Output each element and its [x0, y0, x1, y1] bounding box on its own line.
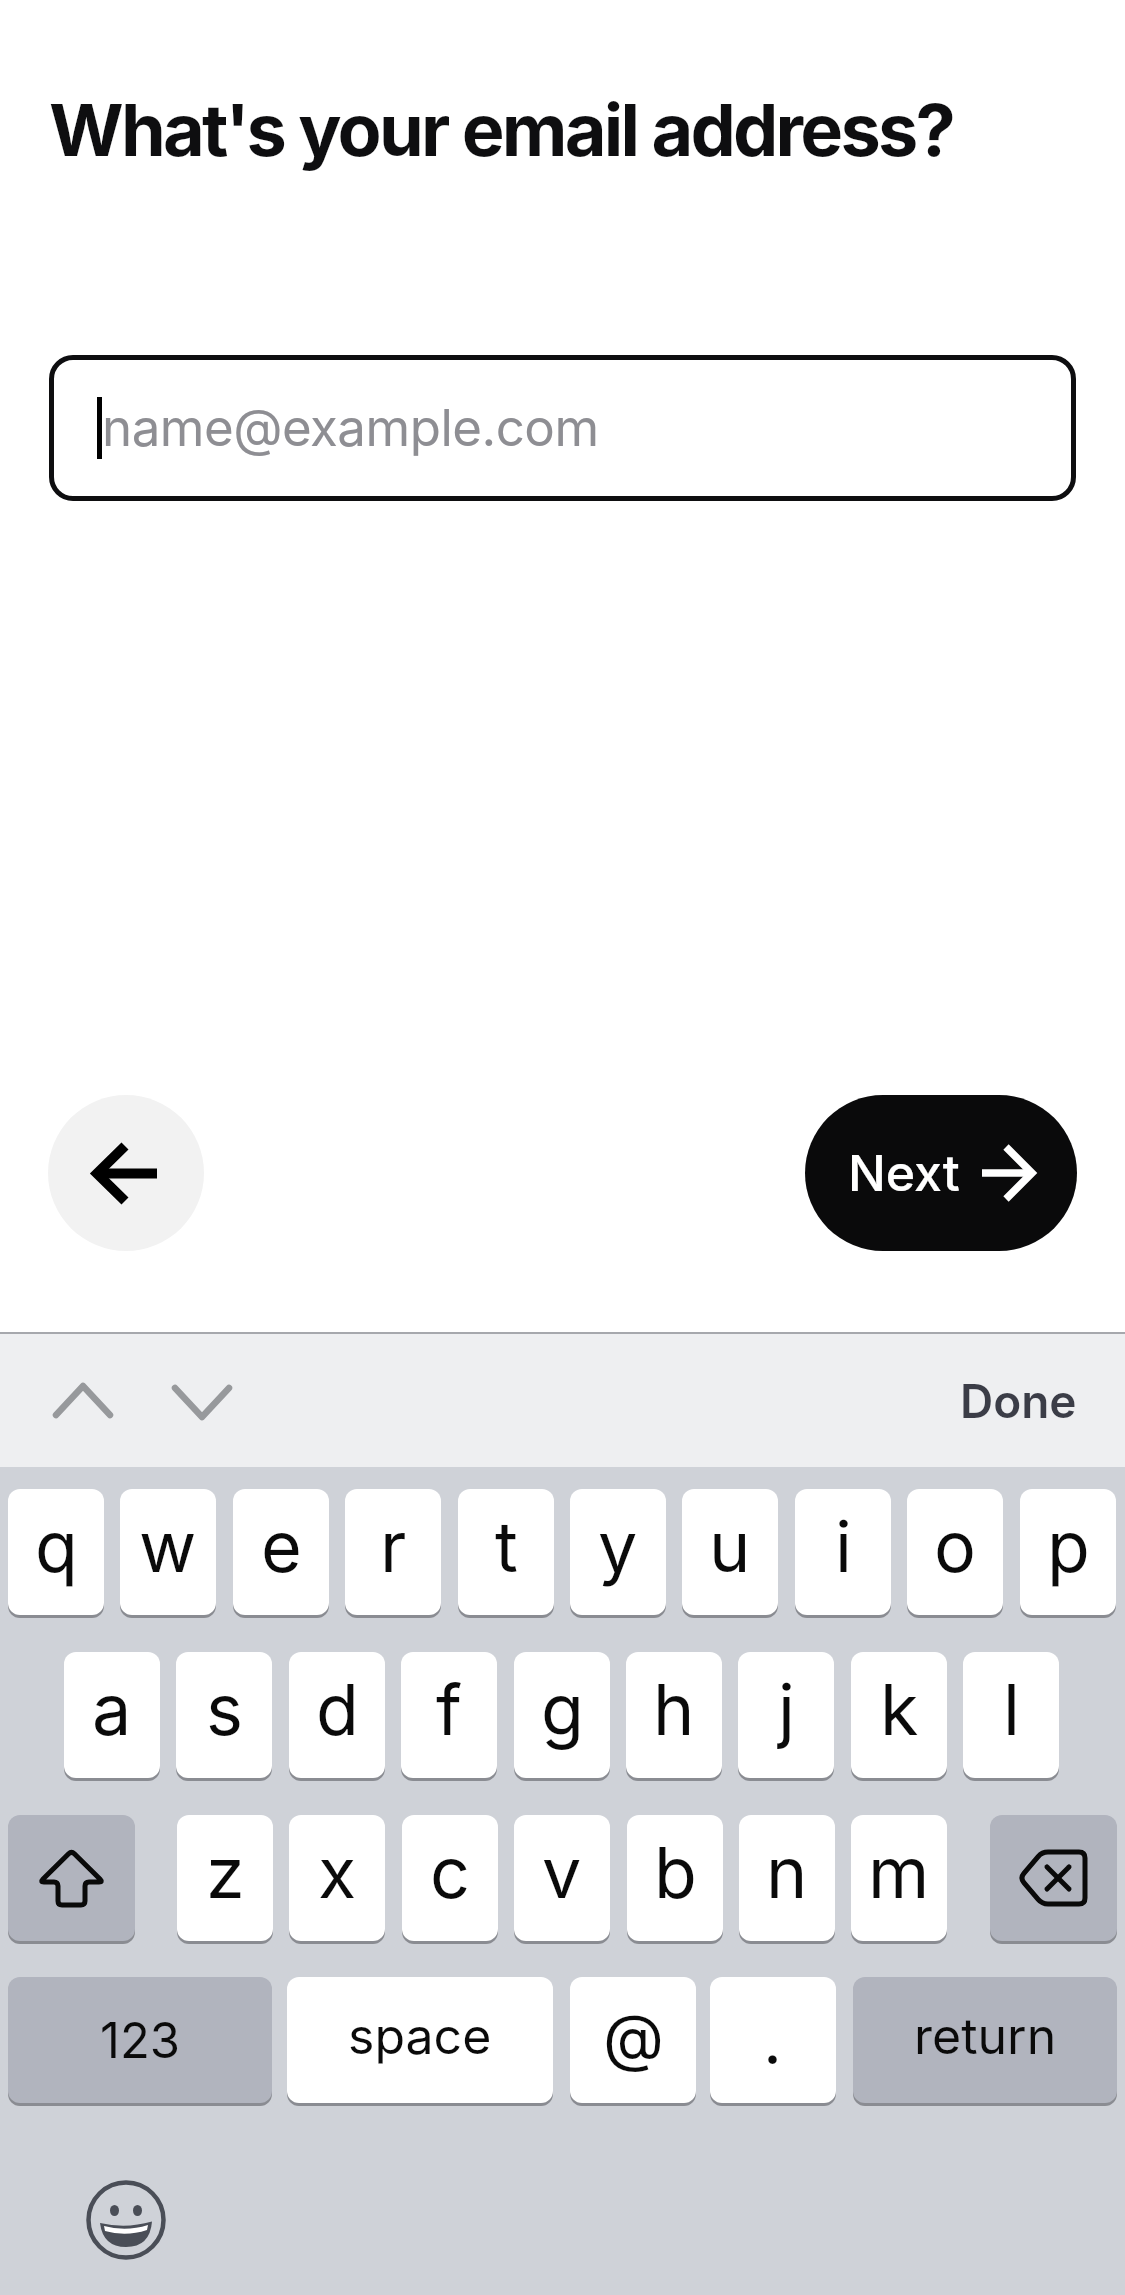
staticText: r: [380, 1504, 407, 1589]
button[interactable]: d: [289, 1652, 385, 1778]
button[interactable]: 123: [8, 1977, 272, 2103]
staticText: d: [316, 1667, 359, 1752]
staticText: p: [1047, 1504, 1090, 1589]
staticText: .: [763, 2000, 783, 2080]
button[interactable]: .: [710, 1977, 836, 2103]
button[interactable]: t: [458, 1489, 554, 1615]
staticText: Done: [960, 1373, 1077, 1429]
button[interactable]: name@example.com: [49, 355, 1076, 501]
staticText: v: [542, 1830, 582, 1915]
button[interactable]: [86, 2180, 166, 2260]
staticText: 123: [100, 2011, 181, 2070]
staticText: o: [934, 1504, 976, 1589]
staticText: f: [436, 1667, 462, 1752]
button[interactable]: s: [176, 1652, 272, 1778]
button[interactable]: [163, 1374, 241, 1430]
button[interactable]: [44, 1374, 122, 1430]
button[interactable]: q: [8, 1489, 104, 1615]
button[interactable]: w: [120, 1489, 216, 1615]
button[interactable]: Done: [960, 1373, 1077, 1429]
button[interactable]: return: [853, 1977, 1117, 2103]
staticText: y: [598, 1504, 638, 1589]
button[interactable]: n: [739, 1815, 835, 1941]
button[interactable]: x: [289, 1815, 385, 1941]
button[interactable]: e: [233, 1489, 329, 1615]
button[interactable]: a: [64, 1652, 160, 1778]
staticText: t: [495, 1504, 518, 1589]
button[interactable]: l: [963, 1652, 1059, 1778]
button[interactable]: space: [287, 1977, 553, 2103]
staticText: g: [541, 1667, 584, 1752]
staticText: u: [709, 1504, 751, 1589]
staticText: l: [1003, 1667, 1020, 1752]
staticText: e: [261, 1504, 302, 1589]
staticText: h: [653, 1667, 695, 1752]
button[interactable]: m: [851, 1815, 947, 1941]
staticText: i: [835, 1504, 852, 1589]
button[interactable]: k: [851, 1652, 947, 1778]
staticText: c: [430, 1830, 470, 1915]
button[interactable]: f: [401, 1652, 497, 1778]
button[interactable]: p: [1020, 1489, 1116, 1615]
button[interactable]: v: [514, 1815, 610, 1941]
button[interactable]: c: [402, 1815, 498, 1941]
staticText: a: [92, 1667, 132, 1752]
staticText: return: [914, 2006, 1057, 2066]
staticText: space: [348, 2006, 492, 2066]
staticText: Next: [848, 1143, 960, 1203]
button[interactable]: [48, 1095, 204, 1251]
button[interactable]: h: [626, 1652, 722, 1778]
button[interactable]: g: [514, 1652, 610, 1778]
staticText: x: [318, 1830, 357, 1915]
button[interactable]: [990, 1815, 1117, 1941]
staticText: w: [139, 1504, 197, 1589]
button[interactable]: b: [627, 1815, 723, 1941]
staticText: @: [603, 1999, 664, 2075]
button[interactable]: o: [907, 1489, 1003, 1615]
button[interactable]: r: [345, 1489, 441, 1615]
staticText: m: [868, 1830, 930, 1915]
button[interactable]: i: [795, 1489, 891, 1615]
button[interactable]: j: [738, 1652, 834, 1778]
staticText: name@example.com: [102, 397, 599, 459]
button[interactable]: @: [570, 1977, 696, 2103]
staticText: b: [654, 1830, 697, 1915]
staticText: s: [206, 1667, 243, 1752]
button[interactable]: y: [570, 1489, 666, 1615]
button[interactable]: [8, 1815, 135, 1941]
staticText: What's your email address?: [49, 86, 953, 173]
button[interactable]: u: [682, 1489, 778, 1615]
button[interactable]: Next: [805, 1095, 1077, 1251]
staticText: k: [880, 1667, 919, 1752]
staticText: z: [206, 1830, 245, 1915]
staticText: j: [778, 1667, 795, 1752]
staticText: q: [35, 1504, 78, 1589]
button[interactable]: z: [177, 1815, 273, 1941]
staticText: n: [766, 1830, 808, 1915]
